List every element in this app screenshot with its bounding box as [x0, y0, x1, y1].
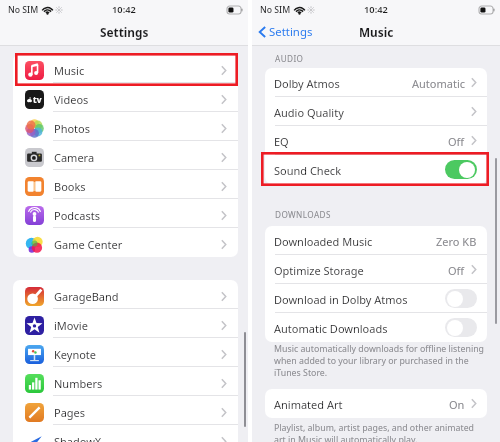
staticText: Zero KB — [436, 234, 477, 249]
button[interactable]: Toggle — [445, 289, 477, 308]
button[interactable]: Audio Quality — [265, 97, 487, 126]
staticText: Pages — [54, 405, 86, 420]
staticText: Keynote — [54, 347, 97, 362]
staticText: Podcasts — [54, 208, 101, 223]
staticText: On — [449, 397, 465, 412]
other: More — [220, 94, 227, 105]
staticText: 10:42 — [364, 3, 388, 16]
other: More — [220, 210, 227, 221]
staticText: Dolby Atmos — [274, 76, 340, 91]
button[interactable]: Sound Check — [265, 155, 487, 184]
button[interactable]: Music — [13, 54, 238, 83]
staticText: Automatic Downloads — [274, 321, 388, 336]
other: More — [470, 135, 477, 146]
staticText: Automatic — [412, 76, 465, 91]
other: More — [470, 106, 477, 117]
staticText: Animated Art — [274, 397, 343, 412]
button[interactable]: Game Center — [13, 228, 238, 257]
staticText: Settings — [269, 24, 313, 40]
staticText: tv — [33, 94, 42, 105]
button[interactable]: Optimize Storage — [265, 255, 487, 284]
other: More — [220, 181, 227, 192]
other: More — [470, 264, 477, 275]
staticText: Off — [448, 263, 465, 278]
other: More — [220, 349, 227, 360]
other: More — [220, 152, 227, 163]
staticText: 10:42 — [112, 3, 136, 16]
staticText: Playlist, album, artist pages, and other… — [274, 422, 475, 442]
button[interactable]: Download in Dolby Atmos — [265, 284, 487, 313]
staticText: Sound Check — [274, 163, 342, 178]
other: More — [220, 378, 227, 389]
staticText: EQ — [274, 134, 289, 149]
staticText: Numbers — [54, 376, 103, 391]
staticText: DOWNLOADS — [275, 209, 331, 220]
staticText: Music — [359, 24, 394, 40]
button[interactable]: Animated Art — [265, 389, 487, 418]
staticText: Optimize Storage — [274, 263, 364, 278]
button[interactable]: Downloaded Music — [265, 226, 487, 255]
other: More — [220, 123, 227, 134]
staticText: Settings — [100, 24, 149, 40]
button[interactable]: ShadowX — [13, 425, 238, 442]
other: More — [470, 77, 477, 88]
staticText: No SIM — [8, 4, 39, 16]
button[interactable]: Automatic Downloads — [265, 313, 487, 342]
button[interactable]: Settings — [259, 24, 313, 40]
button[interactable]: EQ — [265, 126, 487, 155]
other: More — [220, 407, 227, 418]
button[interactable]: Photos — [13, 112, 238, 141]
staticText: ShadowX — [54, 434, 102, 442]
other: More — [220, 239, 227, 250]
staticText: AUDIO — [275, 53, 304, 64]
staticText: GarageBand — [54, 289, 119, 304]
button[interactable]: iMovie — [13, 309, 238, 338]
staticText: No SIM — [260, 4, 291, 16]
button[interactable]: tv — [13, 83, 238, 112]
button[interactable]: Dolby Atmos — [265, 68, 487, 97]
button[interactable]: Podcasts — [13, 199, 238, 228]
button[interactable]: Toggle — [445, 318, 477, 337]
other: More — [220, 65, 227, 76]
other: More — [220, 320, 227, 331]
button[interactable]: Keynote — [13, 338, 238, 367]
staticText: Photos — [54, 121, 91, 136]
button[interactable]: Numbers — [13, 367, 238, 396]
button[interactable]: GarageBand — [13, 280, 238, 309]
button[interactable]: Toggle — [445, 160, 477, 179]
other: More — [220, 436, 227, 442]
staticText: Audio Quality — [274, 105, 344, 120]
other: More — [220, 291, 227, 302]
staticText: Music — [54, 63, 85, 78]
button[interactable]: Books — [13, 170, 238, 199]
staticText: Music automatically downloads for offlin… — [274, 343, 485, 379]
other: More — [470, 398, 477, 409]
staticText: Off — [448, 134, 465, 149]
staticText: iMovie — [54, 318, 88, 333]
staticText: Camera — [54, 150, 95, 165]
staticText: Downloaded Music — [274, 234, 373, 249]
staticText: Books — [54, 179, 86, 194]
button[interactable]: Pages — [13, 396, 238, 425]
staticText: Game Center — [54, 237, 123, 252]
button[interactable]: Camera — [13, 141, 238, 170]
staticText: Videos — [54, 92, 89, 107]
staticText: Download in Dolby Atmos — [274, 292, 408, 307]
